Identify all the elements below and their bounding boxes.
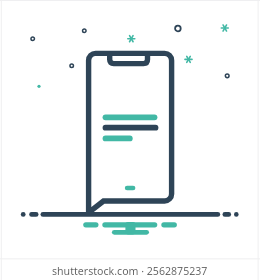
staticText: shutterstock.com · 2562875237 <box>52 264 208 278</box>
